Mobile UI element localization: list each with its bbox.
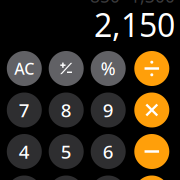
button[interactable]: Divide	[134, 51, 169, 86]
staticText: 6	[103, 139, 114, 164]
button[interactable]: Toggle sign	[49, 51, 84, 86]
button[interactable]: 2	[49, 175, 84, 180]
button[interactable]: Add	[134, 175, 169, 180]
button[interactable]: 7	[7, 92, 42, 127]
button[interactable]: %	[91, 51, 126, 86]
button[interactable]: 3	[91, 175, 126, 180]
button[interactable]: 1	[7, 175, 42, 180]
button[interactable]: Subtract	[134, 134, 169, 169]
button[interactable]: Multiply	[134, 92, 169, 127]
button[interactable]: 9	[91, 92, 126, 127]
staticText: 850 1,300	[90, 0, 175, 7]
button[interactable]: 6	[91, 134, 126, 169]
staticText: %	[101, 57, 116, 80]
staticText: 5	[61, 139, 72, 164]
button[interactable]: 8	[49, 92, 84, 127]
button[interactable]: AC	[7, 51, 42, 86]
staticText: 4	[19, 139, 30, 164]
staticText: 9	[103, 98, 114, 122]
staticText: 2,150	[94, 3, 175, 46]
button[interactable]: 5	[49, 134, 84, 169]
button[interactable]: 4	[7, 134, 42, 169]
staticText: 7	[19, 98, 30, 122]
staticText: AC	[14, 58, 34, 79]
staticText: 8	[61, 98, 72, 122]
